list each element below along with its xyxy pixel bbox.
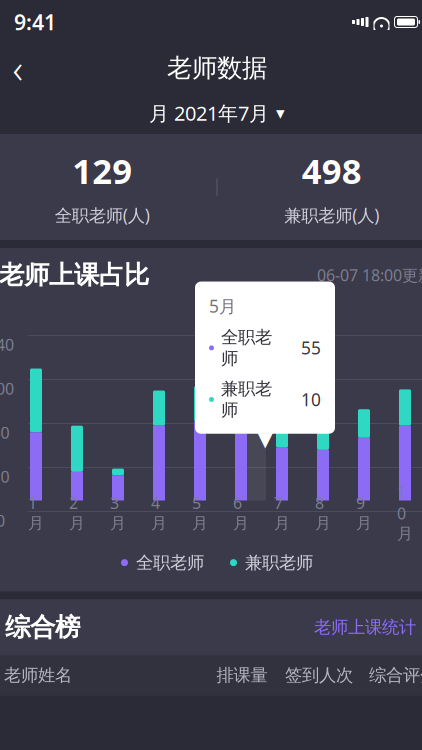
staticText: 60 xyxy=(0,422,9,443)
staticText: 498 xyxy=(302,147,362,193)
staticText: 06-07 18:00更新 xyxy=(317,264,422,286)
staticText: 综合榜 xyxy=(5,612,80,643)
staticText: 老师数据 xyxy=(167,52,267,83)
staticText: 140 xyxy=(0,334,14,355)
staticText: 老师上课统计 xyxy=(314,617,416,638)
staticText: 55 xyxy=(301,336,321,359)
staticText: 100 xyxy=(0,378,14,399)
staticText: 10 xyxy=(301,388,321,411)
staticText: 9:41 xyxy=(14,8,56,36)
staticText: 1月 xyxy=(28,492,44,533)
staticText: ‹ xyxy=(12,41,23,94)
staticText: 7月 xyxy=(274,492,290,533)
button[interactable]: Back xyxy=(0,46,40,90)
staticText: 8月 xyxy=(315,492,331,533)
staticText: 老师姓名 xyxy=(4,665,72,686)
staticText: 10月 xyxy=(397,481,413,543)
staticText: 兼职老师(人) xyxy=(284,203,379,226)
staticText: 5月 xyxy=(192,492,208,533)
button[interactable]: 老师上课统计 xyxy=(314,607,422,647)
staticText: ▾ xyxy=(276,103,285,123)
staticText: 4月 xyxy=(151,492,167,533)
staticText: 兼职老师 xyxy=(245,552,313,573)
staticText: 20 xyxy=(0,466,9,487)
staticText: 5月 xyxy=(209,295,236,318)
staticText: 9月 xyxy=(356,492,372,533)
staticText: › xyxy=(421,613,422,641)
staticText: 3月 xyxy=(110,492,126,533)
staticText: 全职老师(人) xyxy=(55,203,150,226)
staticText: 129 xyxy=(72,147,132,193)
staticText: 综合评分 xyxy=(369,665,422,686)
staticText: 老师上课占比 xyxy=(0,259,149,290)
staticText: ▼ xyxy=(257,428,272,450)
staticText: 兼职老师 xyxy=(221,378,272,421)
staticText: 6月 xyxy=(233,492,249,533)
staticText: 2月 xyxy=(69,492,85,533)
button[interactable]: 月 2021年7月 xyxy=(139,94,295,132)
staticText: 全职老师 xyxy=(221,327,272,369)
staticText: 月 2021年7月 xyxy=(149,100,269,126)
staticText: 0 xyxy=(0,510,5,531)
staticText: 排课量 xyxy=(216,665,267,686)
staticText: 全职老师 xyxy=(136,552,204,573)
staticText: 签到人次 xyxy=(285,665,353,686)
